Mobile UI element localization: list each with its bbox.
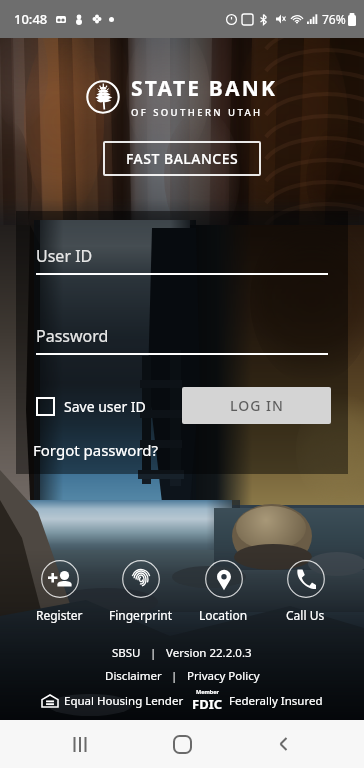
staticText: Federally Insured — [229, 693, 323, 709]
staticText: LOG IN — [230, 396, 284, 415]
staticText: Save user ID — [64, 397, 146, 416]
button[interactable]: Password — [36, 325, 328, 355]
staticText: Location — [199, 607, 248, 623]
staticText: Version 22.2.0.3 — [166, 645, 252, 661]
button[interactable]: Recents — [62, 720, 98, 768]
staticText: OF SOUTHERN UTAH — [131, 106, 263, 119]
button[interactable]: Disclaimer — [105, 668, 162, 684]
button[interactable]: Privacy Policy — [187, 668, 260, 684]
button[interactable]: Back — [265, 720, 301, 768]
button[interactable]: Location — [199, 560, 248, 623]
staticText: | — [162, 668, 187, 684]
staticText: Member — [196, 688, 220, 695]
staticText: Call Us — [286, 607, 325, 623]
staticText: 10:48 — [14, 10, 48, 28]
staticText: Fingerprint — [109, 607, 173, 623]
staticText: STATE BANK — [131, 74, 278, 103]
staticText: Equal Housing Lender — [64, 693, 184, 709]
button[interactable]: Save user ID — [36, 397, 146, 416]
button[interactable]: Register — [36, 560, 83, 623]
button[interactable]: Fingerprint — [109, 560, 173, 623]
staticText: Register — [36, 607, 83, 623]
staticText: 76% — [322, 11, 346, 27]
staticText: User ID — [36, 245, 93, 267]
staticText: SBSU — [112, 645, 141, 661]
staticText: FAST BALANCES — [126, 149, 239, 168]
staticText: Password — [36, 325, 109, 347]
button[interactable]: FAST BALANCES — [103, 141, 261, 176]
button[interactable]: Home — [164, 726, 200, 762]
button[interactable]: User ID — [36, 245, 328, 275]
button[interactable]: Forgot password? — [33, 440, 159, 460]
button[interactable]: Call Us — [286, 560, 325, 623]
button[interactable]: LOG IN — [182, 387, 331, 424]
staticText: | — [141, 645, 166, 661]
staticText: FDIC — [192, 695, 223, 713]
